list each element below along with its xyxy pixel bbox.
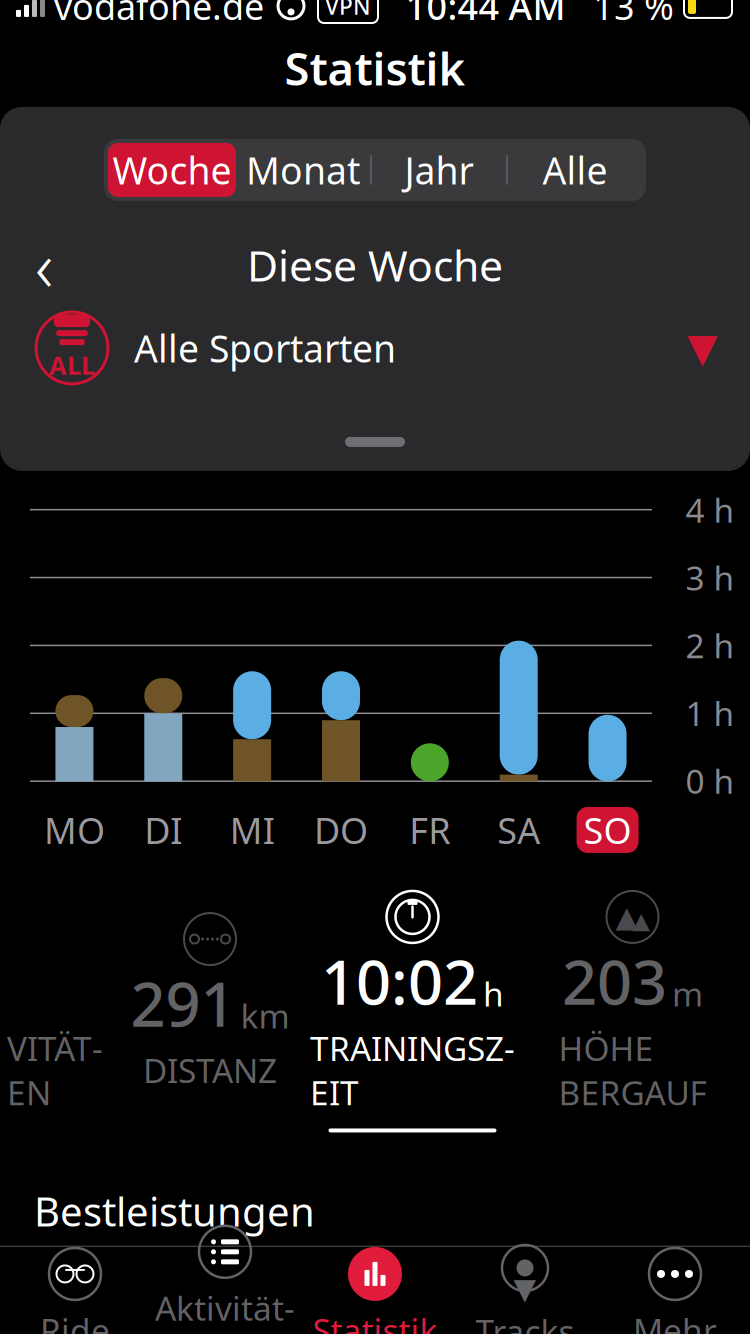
button[interactable]: ▼ <box>450 1247 600 1334</box>
staticText: ‹ <box>35 219 53 311</box>
button[interactable]: Statistik <box>300 1247 450 1334</box>
staticText: HÖHE BERGAUF <box>558 1026 706 1114</box>
staticText: 0 h <box>685 759 734 803</box>
staticText: 13 % <box>593 0 674 30</box>
staticText: 10:02 <box>321 940 478 1022</box>
staticText: Alle Sportarten <box>134 323 396 373</box>
staticText: 3 h <box>685 555 734 600</box>
staticText: Tracks <box>475 1309 574 1334</box>
button[interactable]: 10:02 <box>310 888 515 1132</box>
staticText: SA <box>497 806 540 854</box>
button[interactable]: 291 <box>110 910 310 1110</box>
staticText: vodafone.de <box>54 0 264 30</box>
staticText: ▲ <box>632 908 649 933</box>
staticText: 10:44 AM <box>405 0 565 30</box>
button[interactable]: Ride <box>0 1247 150 1334</box>
staticText: 1 h <box>685 691 734 735</box>
staticText: Aktivitäten <box>155 1286 295 1334</box>
button[interactable]: Woche <box>108 143 236 197</box>
button[interactable]: Alle <box>508 143 642 197</box>
staticText: Jahr <box>404 145 473 195</box>
staticText: Ride <box>40 1308 110 1334</box>
button[interactable]: ALL <box>0 305 750 391</box>
staticText: 2 h <box>685 623 734 668</box>
button[interactable]: ▲ <box>515 888 750 1132</box>
staticText: VPN <box>325 0 371 21</box>
staticText: h <box>483 971 504 1016</box>
button[interactable]: Vorherige Woche <box>14 235 74 295</box>
staticText: 4 h <box>685 488 734 532</box>
staticText: Statistik <box>312 1308 437 1334</box>
button[interactable]: Jahr <box>372 143 506 197</box>
staticText: DI <box>144 806 182 854</box>
staticText: m <box>672 971 703 1016</box>
staticText: 291 <box>130 962 235 1044</box>
staticText: Woche <box>112 145 231 195</box>
staticText: VITÄTEN <box>7 1026 103 1114</box>
staticText: DO <box>314 806 368 854</box>
staticText: ▼ <box>513 1272 536 1306</box>
button[interactable]: Monat <box>236 143 370 197</box>
staticText: DISTANZ <box>143 1048 277 1092</box>
staticText: Alle <box>542 145 607 195</box>
staticText: ALL <box>49 348 95 382</box>
staticText: TRAININGSZEIT <box>310 1026 515 1114</box>
staticText: Diese Woche <box>247 237 503 293</box>
staticText: Mehr <box>633 1308 717 1334</box>
staticText: km <box>240 993 289 1038</box>
staticText: Monat <box>246 145 360 195</box>
button[interactable]: Aktivitäten <box>150 1247 300 1334</box>
staticText: Statistik <box>284 38 465 98</box>
staticText: ▼ <box>687 325 718 371</box>
staticText: FR <box>409 806 450 854</box>
staticText: MI <box>230 806 275 854</box>
staticText: MO <box>44 806 105 854</box>
staticText: Bestleistungen <box>34 1184 315 1238</box>
staticText: SO <box>584 806 632 854</box>
staticText: ▲ <box>615 900 638 934</box>
button[interactable]: Mehr <box>600 1247 750 1334</box>
staticText: 203 <box>562 940 667 1022</box>
